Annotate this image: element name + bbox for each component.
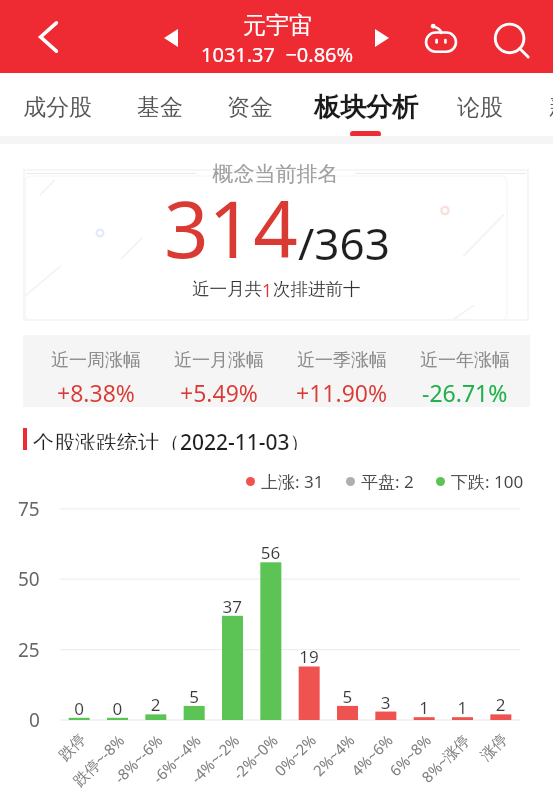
staticText: -26.71% [422,377,508,407]
button[interactable]: 近一年涨幅 [403,335,526,407]
staticText: 上涨: 31 [261,470,324,492]
button[interactable]: 新闻 [528,73,553,136]
staticText: 次排进前十 [273,278,361,300]
staticText: 新闻 [549,93,553,122]
button[interactable]: 资金 [206,73,294,136]
button[interactable]: 上涨: 31 [246,470,324,492]
staticText: 论股 [457,93,503,122]
button[interactable]: 下跌: 100 [436,470,524,492]
button[interactable]: 近一月涨幅 [157,335,280,407]
staticText: 近一月涨幅 [174,349,264,372]
staticText: 下跌: 100 [451,470,524,492]
staticText: 概念当前排名 [196,159,355,188]
button[interactable]: 板块分析 [308,73,424,136]
button[interactable]: 论股 [436,73,524,136]
staticText: 成分股 [23,93,92,122]
staticText: 近一年涨幅 [420,349,510,372]
staticText: 平盘: 2 [361,470,414,492]
staticText: 资金 [227,93,273,122]
staticText: 元宇宙 [243,11,312,40]
staticText: 基金 [137,93,183,122]
button[interactable]: Search [486,14,538,66]
staticText: 314 [164,175,298,281]
staticText: 1031.37 −0.86% [201,41,354,68]
button[interactable]: 平盘: 2 [346,470,414,492]
button[interactable]: Previous sector [149,16,193,60]
staticText: 个股涨跌统计（2022-11-03） [33,428,311,450]
staticText: 近一季涨幅 [297,349,387,372]
button[interactable]: AI assistant [415,12,467,64]
staticText: /363 [298,213,390,273]
button[interactable]: 成分股 [13,73,101,136]
staticText: 1 [262,278,273,302]
staticText: 板块分析 [314,91,418,124]
button[interactable]: Back [20,8,77,65]
button[interactable]: 基金 [116,73,204,136]
staticText: 近一周涨幅 [51,349,141,372]
staticText: +8.38% [57,377,135,407]
staticText: 近一月共 [192,278,262,300]
button[interactable]: 近一季涨幅 [280,335,403,407]
staticText: +5.49% [180,377,258,407]
staticText: +11.90% [296,377,388,407]
button[interactable]: 近一周涨幅 [34,335,157,407]
button[interactable]: Next sector [360,16,404,60]
